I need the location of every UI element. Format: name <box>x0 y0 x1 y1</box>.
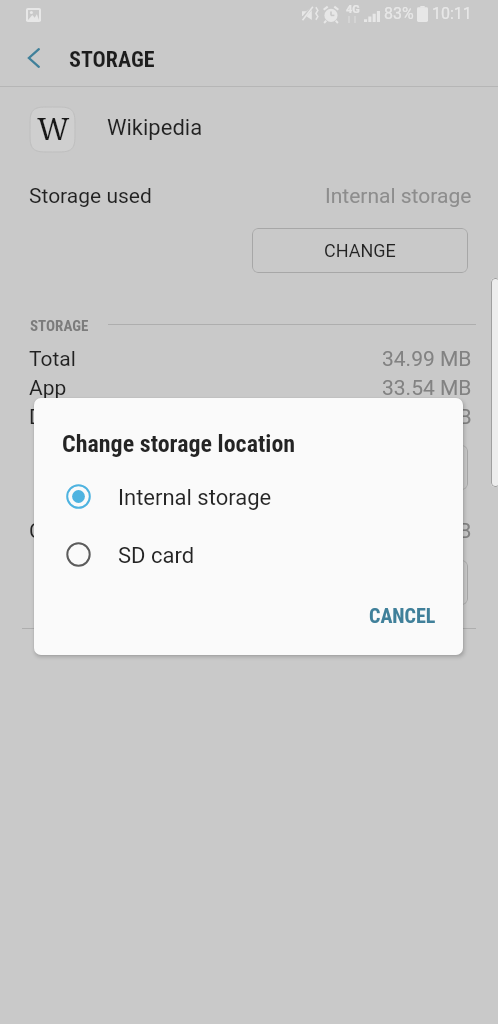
staticText: 1.45 MB <box>394 405 472 430</box>
staticText: STORAGE <box>69 47 155 73</box>
staticText: Total <box>29 347 76 372</box>
staticText: Wikipedia <box>107 115 203 141</box>
staticText: App <box>29 376 67 401</box>
button[interactable]: CHANGE <box>252 228 468 273</box>
button[interactable]: W <box>0 97 498 162</box>
staticText: Internal storage <box>118 485 272 511</box>
button[interactable]: Internal storage <box>34 473 463 519</box>
staticText: Internal storage <box>325 184 472 209</box>
staticText: 10:11 <box>432 4 472 23</box>
staticText: Storage used <box>29 184 152 209</box>
staticText: 34.99 MB <box>382 347 472 372</box>
button[interactable]: CLEAR CACHE <box>252 560 468 605</box>
button[interactable]: CLEAR DATA <box>252 445 468 490</box>
staticText: Data <box>29 405 73 430</box>
staticText: 4G <box>346 3 360 16</box>
button[interactable]: CANCEL <box>352 592 452 638</box>
staticText: Change storage location <box>62 430 296 458</box>
button[interactable]: Navigate up <box>11 35 57 81</box>
staticText: 33.54 MB <box>382 376 472 401</box>
staticText: 83% <box>384 4 414 23</box>
staticText: STORAGE <box>30 317 89 335</box>
staticText: 0.00 B <box>412 519 472 544</box>
staticText: Cache <box>29 519 88 544</box>
staticText: CANCEL <box>369 604 436 627</box>
staticText: SD card <box>118 543 195 569</box>
staticText: W <box>37 107 70 149</box>
staticText: CHANGE <box>324 240 396 261</box>
button[interactable]: SD card <box>34 531 463 577</box>
button[interactable]: Storage used <box>0 172 498 216</box>
